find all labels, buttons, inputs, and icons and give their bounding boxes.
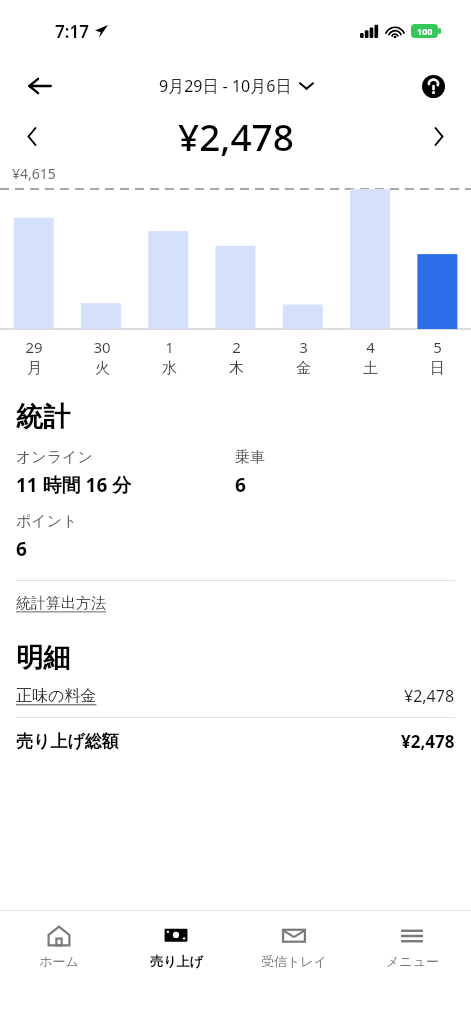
staticText: 火	[95, 359, 110, 378]
staticText: 売り上げ	[150, 953, 203, 969]
staticText: 統計算出方法	[16, 594, 106, 613]
button[interactable]: 統計算出方法	[16, 594, 106, 613]
staticText: 6	[235, 472, 246, 498]
staticText: 統計	[16, 400, 70, 434]
staticText: ホーム	[39, 953, 79, 969]
button[interactable]: ホーム	[0, 911, 117, 1024]
staticText: 100	[417, 25, 433, 37]
staticText: 水	[162, 359, 177, 378]
button[interactable]: 受信トレイ	[235, 911, 353, 1024]
staticText: 6	[16, 536, 27, 562]
staticText: ¥4,615	[12, 164, 56, 183]
staticText: ポイント	[16, 512, 78, 531]
staticText: 29	[25, 337, 43, 357]
staticText: ¥2,478	[401, 730, 455, 753]
staticText: 30	[93, 337, 111, 357]
staticText: 11 時間 16 分	[16, 472, 132, 498]
staticText: ¥2,478	[178, 111, 294, 161]
button[interactable]: Next week	[419, 116, 459, 156]
staticText: メニュー	[386, 953, 439, 969]
button[interactable]: Previous week	[12, 116, 52, 156]
staticText: 土	[363, 359, 378, 378]
staticText: ¥2,478	[404, 685, 455, 707]
staticText: 明細	[16, 641, 70, 675]
button[interactable]: 売り上げ	[117, 911, 235, 1024]
staticText: 木	[229, 359, 244, 378]
staticText: 3	[299, 337, 308, 357]
staticText: 7:17	[55, 20, 89, 43]
staticText: 2	[232, 337, 241, 357]
staticText: 受信トレイ	[261, 953, 327, 969]
button[interactable]: メニュー	[353, 911, 471, 1024]
staticText: 乗車	[235, 448, 265, 467]
staticText: 売り上げ総額	[16, 731, 119, 752]
staticText: 5	[433, 337, 442, 357]
button[interactable]: 正味の料金	[16, 685, 455, 707]
staticText: 正味の料金	[16, 686, 97, 706]
staticText: オンライン	[16, 448, 93, 467]
button[interactable]: 9月29日 - 10月6日	[159, 75, 313, 97]
staticText: 4	[366, 337, 375, 357]
button[interactable]: Back	[18, 64, 62, 108]
staticText: 月	[27, 359, 42, 378]
staticText: 1	[165, 337, 174, 357]
staticText: 日	[430, 359, 445, 378]
button[interactable]: Help	[411, 64, 455, 108]
staticText: 9月29日 - 10月6日	[159, 75, 292, 97]
staticText: 金	[296, 359, 311, 378]
